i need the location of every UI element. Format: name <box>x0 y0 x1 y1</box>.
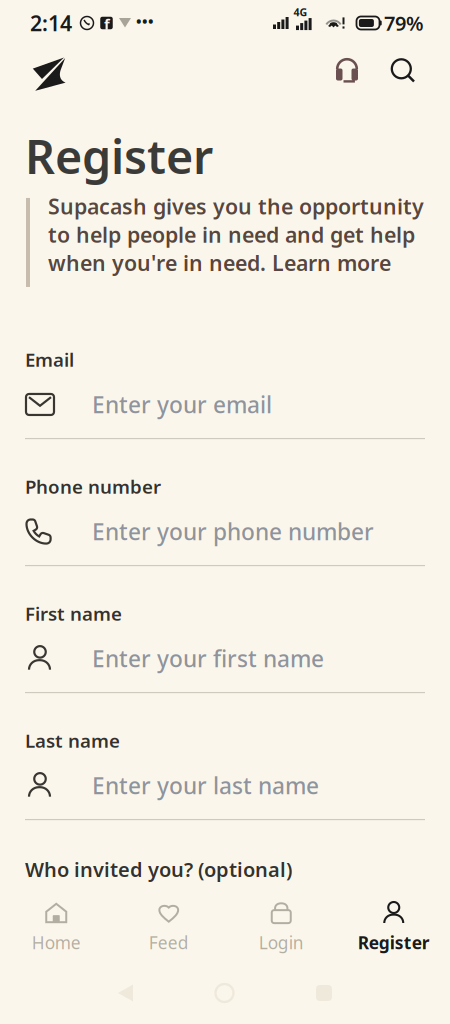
staticText: 4G <box>293 5 307 19</box>
button[interactable]: Enter your first name <box>25 625 425 692</box>
staticText: Last name <box>25 728 120 753</box>
staticText: ••• <box>136 11 154 31</box>
staticText: Supacash gives you the opportunity to he… <box>48 192 424 277</box>
staticText: Enter your email <box>92 389 272 419</box>
staticText: Login <box>259 931 304 954</box>
button[interactable]: Login <box>225 892 337 962</box>
button[interactable]: Search <box>384 54 423 93</box>
staticText: Register <box>358 931 430 954</box>
staticText: Register <box>25 125 213 187</box>
button[interactable]: Enter your email <box>25 371 425 438</box>
staticText: Who invited you? (optional) <box>25 856 292 883</box>
button[interactable]: Feed <box>112 892 225 962</box>
staticText: 2:14 <box>30 9 72 37</box>
button[interactable]: Supacash home <box>30 52 68 96</box>
button[interactable]: Enter your phone number <box>25 498 425 565</box>
staticText: Home <box>32 931 81 954</box>
staticText: Enter your first name <box>92 643 324 673</box>
button[interactable]: Support <box>329 53 366 94</box>
staticText: Email <box>25 347 74 372</box>
staticText: 79% <box>384 10 424 36</box>
button[interactable]: Register <box>337 892 450 962</box>
button[interactable]: Back <box>108 974 143 1011</box>
staticText: Feed <box>149 931 189 954</box>
button[interactable]: Home <box>0 892 112 962</box>
staticText: Enter your phone number <box>92 516 374 546</box>
staticText: Enter your last name <box>92 770 319 800</box>
staticText: f <box>104 14 110 34</box>
button[interactable]: Home <box>205 974 243 1012</box>
staticText: Phone number <box>25 474 161 499</box>
button[interactable]: Recents <box>306 975 342 1011</box>
button[interactable]: Enter your last name <box>25 752 425 819</box>
staticText: First name <box>25 601 122 626</box>
